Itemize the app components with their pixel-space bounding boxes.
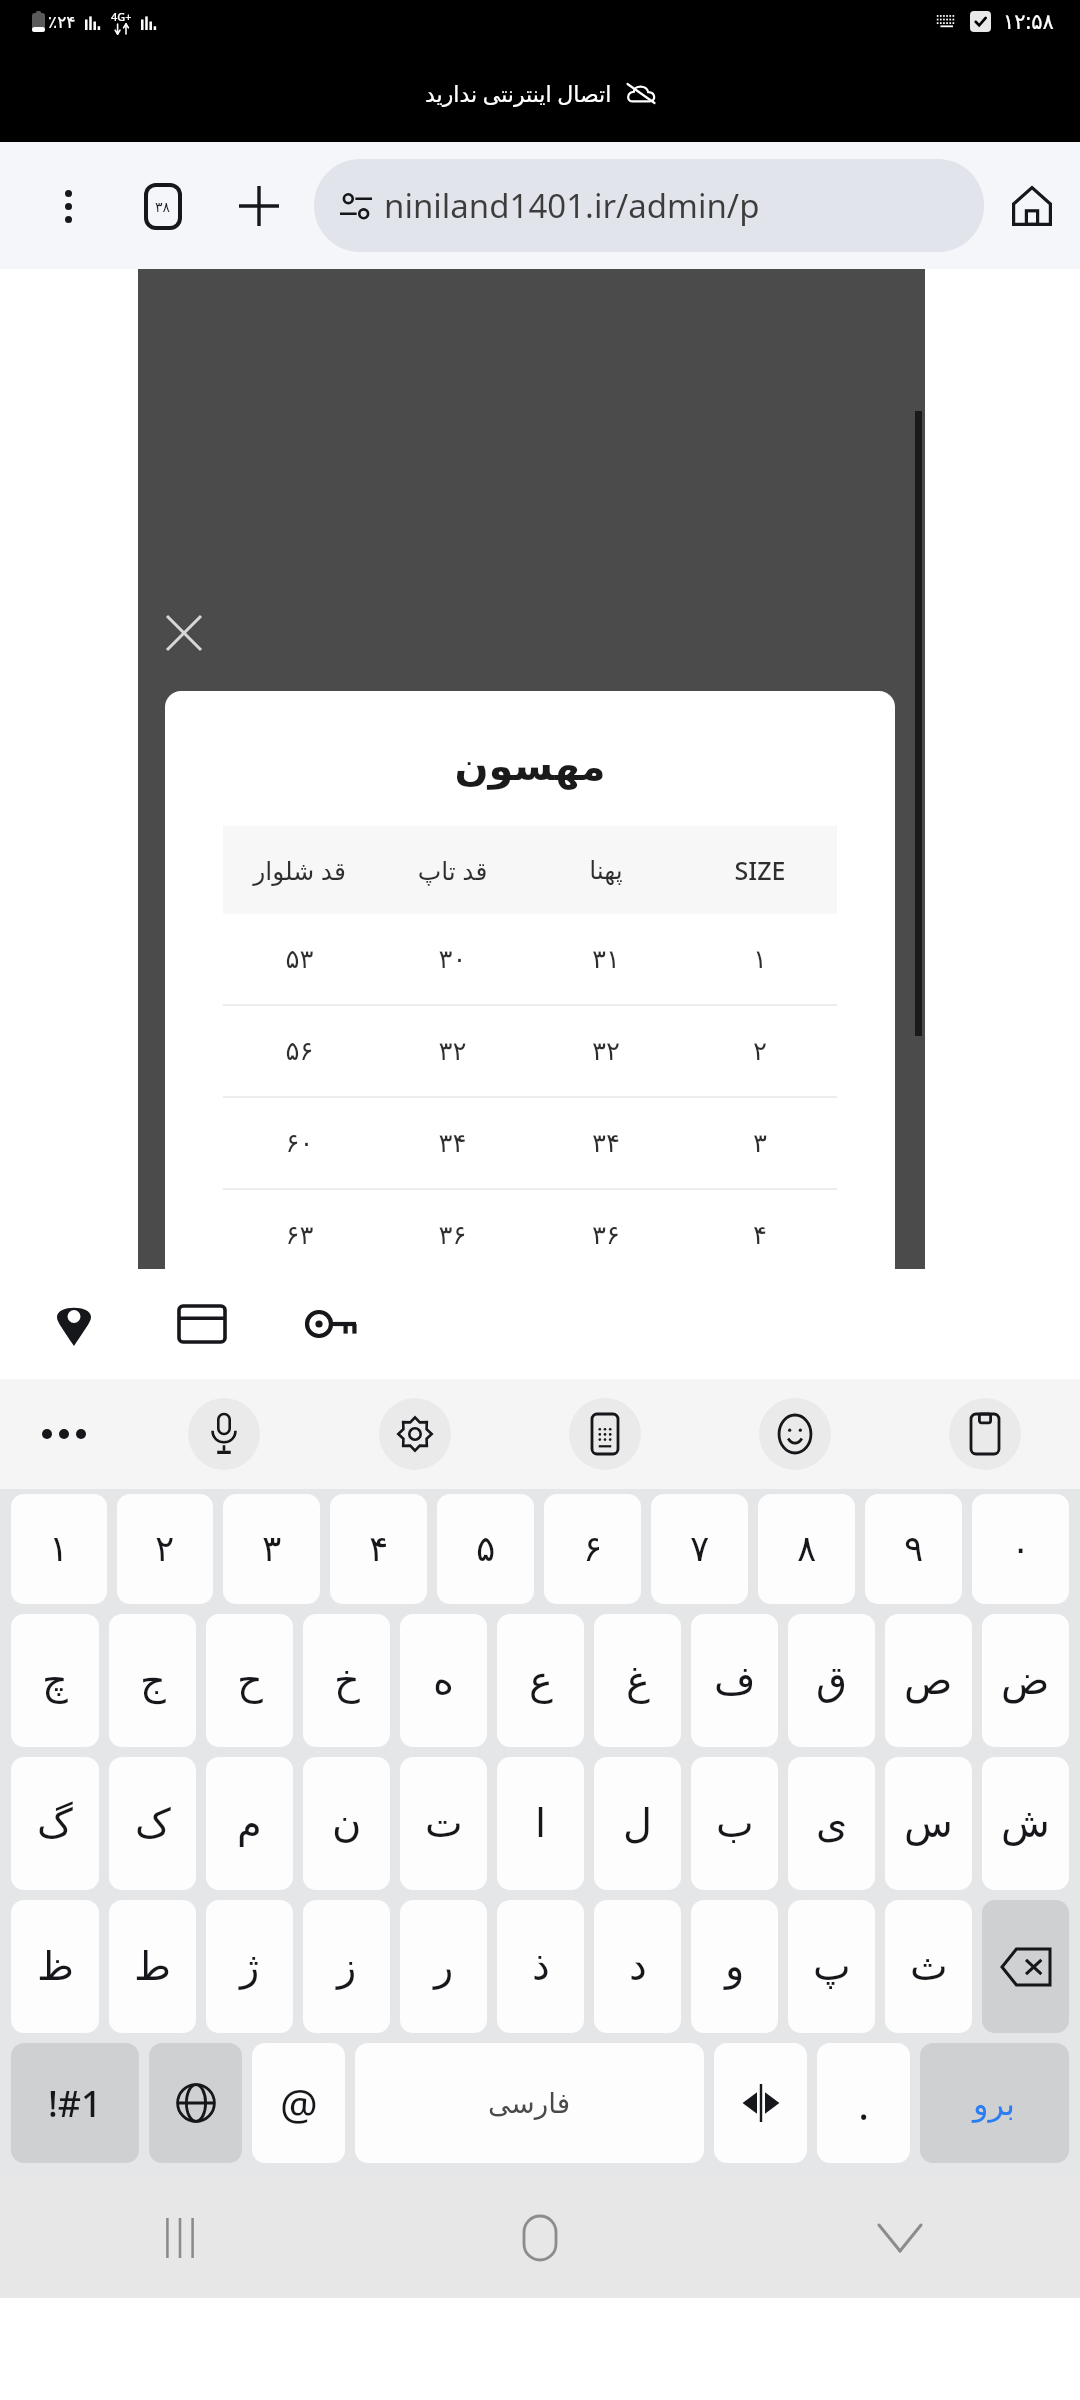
button[interactable]: Home bbox=[984, 158, 1080, 254]
button[interactable]: More bbox=[0, 1379, 128, 1489]
staticText: چ bbox=[42, 1657, 68, 1704]
button[interactable]: niniland1401.ir/admin/p bbox=[314, 159, 984, 252]
button[interactable]: Recent apps bbox=[0, 2178, 360, 2298]
button[interactable]: ث bbox=[885, 1900, 972, 2033]
button[interactable]: More options bbox=[40, 178, 96, 234]
button[interactable]: Move cursor bbox=[714, 2043, 807, 2163]
button[interactable]: ز bbox=[303, 1900, 390, 2033]
staticText: ذ bbox=[532, 1943, 550, 1990]
staticText: @ bbox=[280, 2075, 318, 2132]
staticText: ٪۲۴ bbox=[48, 12, 76, 32]
staticText: ض bbox=[1001, 1657, 1050, 1704]
button[interactable]: ۴ bbox=[330, 1494, 427, 1604]
button[interactable]: ع bbox=[497, 1614, 584, 1747]
button[interactable]: ل bbox=[594, 1757, 681, 1890]
button[interactable]: برو bbox=[920, 2043, 1069, 2163]
button[interactable]: ب bbox=[691, 1757, 778, 1890]
button[interactable]: گ bbox=[11, 1757, 99, 1890]
button[interactable]: @ bbox=[252, 2043, 345, 2163]
staticText: ۶ bbox=[583, 1528, 603, 1570]
button[interactable]: . bbox=[817, 2043, 910, 2163]
button[interactable]: ص bbox=[885, 1614, 972, 1747]
button[interactable]: ۲ bbox=[117, 1494, 213, 1604]
button[interactable]: س bbox=[885, 1757, 972, 1890]
staticText: قد تاپ bbox=[376, 853, 529, 887]
staticText: م bbox=[237, 1800, 262, 1847]
staticText: ۳ bbox=[683, 1128, 837, 1158]
staticText: ۶۰ bbox=[223, 1128, 376, 1158]
staticText: ب bbox=[716, 1800, 754, 1847]
button[interactable]: خ bbox=[303, 1614, 390, 1747]
staticText: ۳۶ bbox=[529, 1220, 683, 1250]
button[interactable]: !#1 bbox=[11, 2043, 139, 2163]
button[interactable]: ض bbox=[982, 1614, 1069, 1747]
staticText: ۱۲:۵۸ bbox=[1003, 7, 1054, 36]
button[interactable]: ن bbox=[303, 1757, 390, 1890]
button[interactable]: ژ bbox=[206, 1900, 293, 2033]
button[interactable]: Emoji bbox=[759, 1398, 831, 1470]
staticText: ۳۲ bbox=[376, 1036, 529, 1066]
staticText: 4G+ bbox=[111, 9, 132, 24]
button[interactable]: ک bbox=[109, 1757, 196, 1890]
button[interactable]: Voice input bbox=[188, 1398, 260, 1470]
button[interactable]: ۷ bbox=[651, 1494, 748, 1604]
button[interactable]: ا bbox=[497, 1757, 584, 1890]
staticText: ش bbox=[1001, 1800, 1050, 1847]
staticText: ظ bbox=[37, 1943, 74, 1990]
button[interactable]: ش bbox=[982, 1757, 1069, 1890]
button[interactable]: فارسی bbox=[355, 2043, 704, 2163]
button[interactable]: ۹ bbox=[865, 1494, 962, 1604]
button[interactable]: ج bbox=[109, 1614, 196, 1747]
button[interactable]: ف bbox=[691, 1614, 778, 1747]
button[interactable]: ۰ bbox=[972, 1494, 1069, 1604]
button[interactable]: ط bbox=[109, 1900, 196, 2033]
button[interactable]: ۶ bbox=[544, 1494, 641, 1604]
button[interactable]: Tabs bbox=[132, 175, 194, 237]
button[interactable]: Clipboard bbox=[949, 1398, 1021, 1470]
button[interactable]: ذ bbox=[497, 1900, 584, 2033]
staticText: ی bbox=[816, 1800, 848, 1847]
staticText: ر bbox=[434, 1943, 454, 1990]
staticText: ۳۰ bbox=[376, 944, 529, 974]
staticText: ۲ bbox=[683, 1036, 837, 1066]
staticText: ۱ bbox=[49, 1528, 69, 1570]
staticText: ا bbox=[535, 1800, 547, 1847]
button[interactable]: ت bbox=[400, 1757, 487, 1890]
button[interactable]: ظ bbox=[11, 1900, 99, 2033]
button[interactable]: ر bbox=[400, 1900, 487, 2033]
button[interactable]: One-handed bbox=[569, 1398, 641, 1470]
button[interactable]: پ bbox=[788, 1900, 875, 2033]
button[interactable]: د bbox=[594, 1900, 681, 2033]
button[interactable]: Home bbox=[360, 2178, 720, 2298]
button[interactable]: Payment methods bbox=[164, 1286, 240, 1362]
button[interactable]: غ bbox=[594, 1614, 681, 1747]
button[interactable]: ۳ bbox=[223, 1494, 320, 1604]
button[interactable]: ق bbox=[788, 1614, 875, 1747]
button[interactable]: چ bbox=[11, 1614, 99, 1747]
staticText: ۶۳ bbox=[223, 1220, 376, 1250]
staticText: ک bbox=[135, 1800, 171, 1847]
staticText: ث bbox=[910, 1943, 948, 1990]
button[interactable]: Addresses bbox=[36, 1286, 112, 1362]
button[interactable]: ۸ bbox=[758, 1494, 855, 1604]
staticText: س bbox=[904, 1800, 953, 1847]
staticText: ق bbox=[816, 1657, 848, 1704]
button[interactable]: Backspace bbox=[982, 1900, 1069, 2033]
staticText: ه bbox=[433, 1657, 454, 1704]
button[interactable]: ی bbox=[788, 1757, 875, 1890]
button[interactable]: ه bbox=[400, 1614, 487, 1747]
button[interactable]: Close bbox=[148, 597, 220, 669]
button[interactable]: Passwords bbox=[292, 1286, 368, 1362]
button[interactable]: م bbox=[206, 1757, 293, 1890]
button[interactable]: ۵ bbox=[437, 1494, 534, 1604]
button[interactable]: ۱ bbox=[11, 1494, 107, 1604]
staticText: ۸ bbox=[797, 1528, 817, 1570]
button[interactable]: Settings bbox=[379, 1398, 451, 1470]
button[interactable]: ح bbox=[206, 1614, 293, 1747]
button[interactable]: Change language bbox=[149, 2043, 242, 2163]
button[interactable]: و bbox=[691, 1900, 778, 2033]
button[interactable]: Hide keyboard bbox=[720, 2178, 1080, 2298]
button[interactable]: New tab bbox=[228, 175, 290, 237]
